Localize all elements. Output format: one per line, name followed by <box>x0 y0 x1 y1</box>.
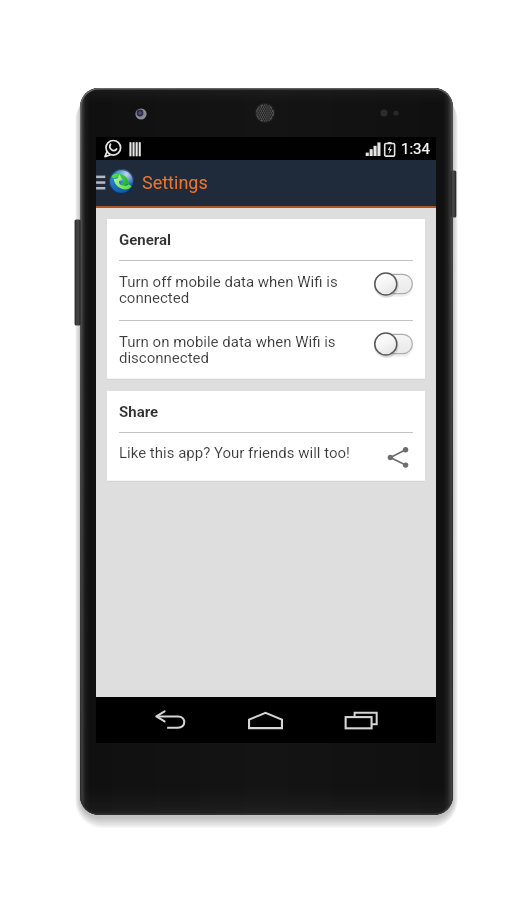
button[interactable]: Home <box>218 697 313 743</box>
staticText: disconnected <box>119 349 209 367</box>
staticText: Settings <box>142 172 208 193</box>
button[interactable]: Open navigation drawer <box>96 168 109 198</box>
staticText: Share <box>119 403 159 421</box>
button[interactable]: Toggle <box>374 272 413 296</box>
button[interactable]: Back <box>124 697 218 743</box>
staticText: connected <box>119 289 190 307</box>
staticText: General <box>119 231 172 249</box>
staticText: 1:34 <box>401 140 430 158</box>
button[interactable]: Recent apps <box>313 697 409 743</box>
button[interactable]: Like this app? Your friends will too! <box>107 433 425 482</box>
button[interactable]: Turn off mobile data when Wifi is <box>107 261 425 320</box>
button[interactable]: Share <box>382 443 412 473</box>
staticText: Turn off mobile data when Wifi is <box>119 273 338 291</box>
button[interactable]: Turn on mobile data when Wifi is <box>107 321 425 380</box>
staticText: Turn on mobile data when Wifi is <box>119 333 336 351</box>
button[interactable]: Toggle <box>374 332 413 356</box>
staticText: Like this app? Your friends will too! <box>119 444 350 462</box>
